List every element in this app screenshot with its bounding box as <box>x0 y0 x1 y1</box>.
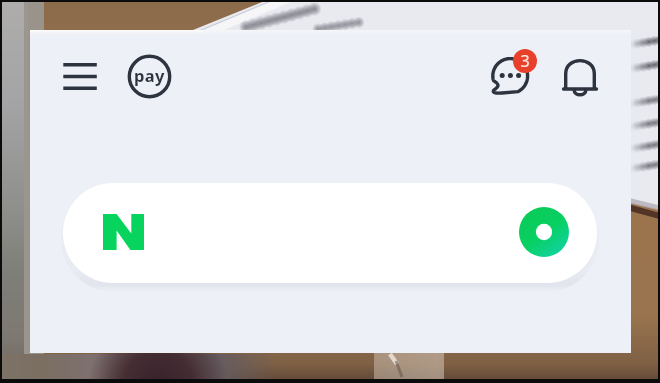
button[interactable]: Menu <box>55 56 105 98</box>
staticText: pay <box>134 64 165 86</box>
button[interactable]: Search with Green Dot <box>519 207 569 257</box>
button[interactable]: Notifications <box>554 56 606 108</box>
button[interactable]: Messages, 3 unread <box>485 50 541 106</box>
staticText: 3 <box>520 50 530 72</box>
button[interactable]: Naver Pay <box>127 54 172 99</box>
button[interactable]: Search with Green Dot <box>63 183 597 283</box>
